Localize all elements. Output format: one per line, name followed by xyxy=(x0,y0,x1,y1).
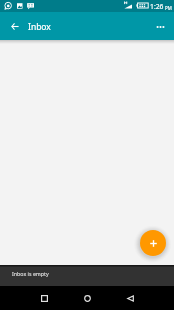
button[interactable]: Compose xyxy=(140,230,166,256)
button[interactable]: More options xyxy=(148,14,174,41)
staticText: Inbox is empty xyxy=(12,270,49,277)
button[interactable]: Inbox is empty xyxy=(0,267,174,286)
staticText: PM xyxy=(165,5,172,11)
button[interactable]: Back xyxy=(109,286,152,310)
button[interactable]: Back xyxy=(0,14,28,41)
button[interactable]: Recents xyxy=(22,286,66,310)
staticText: Inbox xyxy=(28,21,51,33)
staticText: 1:26 xyxy=(150,2,164,11)
button[interactable]: Home xyxy=(66,286,109,310)
